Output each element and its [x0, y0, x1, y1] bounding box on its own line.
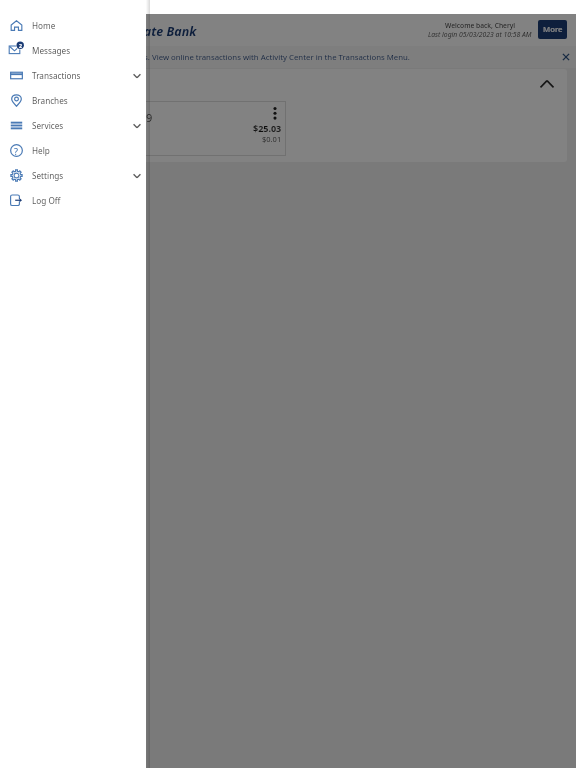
staticText: Branches — [32, 95, 68, 106]
staticText: Transactions — [32, 70, 81, 81]
button[interactable]: Services — [0, 113, 146, 138]
staticText: Messages — [32, 45, 71, 56]
staticText: Settings — [32, 170, 64, 181]
staticText: Accounts — [21, 76, 75, 92]
button[interactable]: 2 — [0, 38, 146, 63]
staticText: $0.01 — [262, 134, 282, 144]
button[interactable]: Close banner — [559, 50, 573, 64]
staticText: Home — [32, 20, 56, 31]
button[interactable]: Log Off — [0, 188, 146, 213]
button[interactable]: Collapse accounts — [537, 74, 557, 94]
staticText: 2 — [19, 42, 22, 49]
staticText: Help — [32, 145, 50, 156]
button[interactable]: Personal Checking ...1239 — [19, 101, 286, 156]
button[interactable]: Transactions — [0, 63, 146, 88]
staticText: Last login 05/03/2023 at 10:58 AM — [428, 30, 532, 39]
staticText: Good news. View online transactions with… — [107, 52, 410, 63]
staticText: ? — [14, 145, 19, 157]
staticText: More — [543, 24, 563, 35]
staticText: Services — [32, 120, 64, 131]
button[interactable]: Account options — [267, 104, 283, 120]
button[interactable]: Home — [0, 13, 146, 38]
staticText: First State Bank — [102, 23, 197, 40]
staticText: Welcome back, Cheryl — [445, 21, 516, 30]
button[interactable]: Branches — [0, 88, 146, 113]
staticText: Personal Checking ...1239 — [20, 110, 153, 125]
button[interactable]: ? — [0, 138, 146, 163]
staticText: $25.03 — [253, 122, 282, 134]
button[interactable]: Settings — [0, 163, 146, 188]
staticText: Log Off — [32, 195, 61, 206]
button[interactable]: More — [538, 20, 567, 39]
